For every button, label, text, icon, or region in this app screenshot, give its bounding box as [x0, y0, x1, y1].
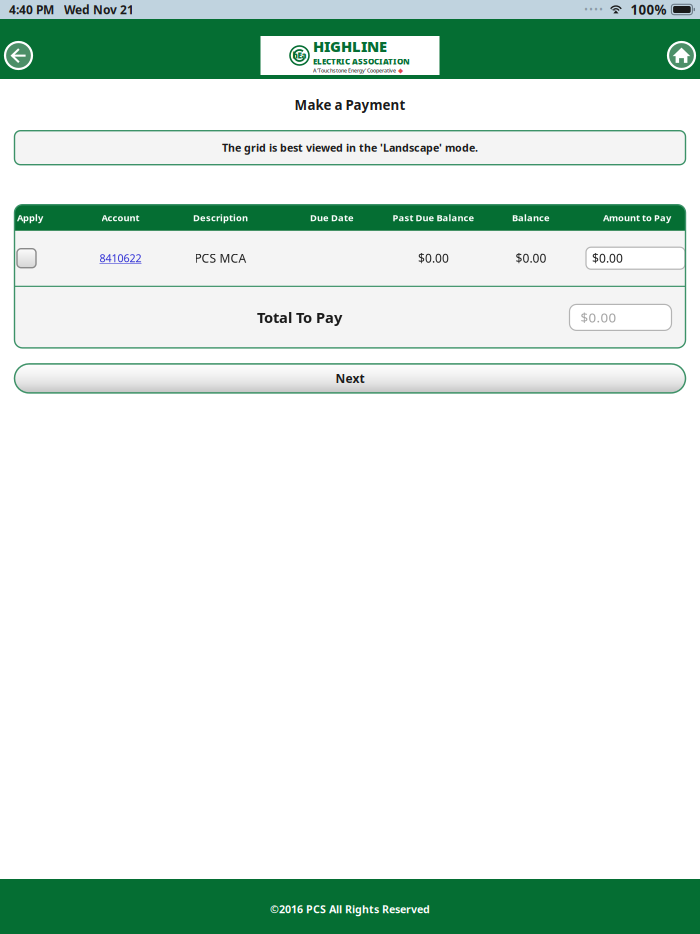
staticText: Make a Payment	[294, 96, 405, 114]
staticText: Total To Pay	[257, 308, 342, 327]
staticText: hEa	[292, 50, 306, 61]
button[interactable]: Home	[665, 36, 698, 75]
staticText: Due Date	[310, 211, 354, 224]
button[interactable]: Next	[14, 364, 685, 393]
staticText: 8410622	[99, 251, 141, 265]
staticText: Description	[193, 211, 248, 224]
staticText: 100%	[630, 1, 666, 18]
staticText: A 'Touchstone Energy' Cooperative	[313, 67, 396, 74]
staticText: Wed Nov 21	[64, 1, 134, 17]
staticText: ELECTRIC ASSOCIATION	[313, 56, 410, 67]
staticText: Apply	[17, 211, 43, 224]
staticText: Past Due Balance	[392, 211, 474, 224]
staticText: Amount to Pay	[603, 211, 671, 224]
staticText: Account	[101, 211, 139, 224]
staticText: 4:40 PM	[9, 1, 54, 17]
staticText: $0.00	[592, 250, 623, 266]
button[interactable]: Apply payment to this account	[12, 231, 73, 286]
button[interactable]: Back	[2, 36, 35, 75]
staticText: HIGHLINE	[313, 37, 387, 56]
staticText: Balance	[512, 211, 550, 224]
staticText: ©2016 PCS All Rights Reserved	[270, 902, 430, 916]
staticText: $0.00	[580, 309, 616, 326]
staticText: PCS MCA	[194, 250, 246, 266]
staticText: • • • •	[584, 4, 602, 15]
button[interactable]: 8410622	[73, 231, 168, 286]
staticText: $0.00	[418, 250, 449, 266]
staticText: The grid is best viewed in the 'Landscap…	[222, 141, 478, 155]
staticText: Next	[335, 370, 364, 386]
staticText: $0.00	[515, 250, 546, 266]
staticText: ◆	[398, 67, 403, 74]
